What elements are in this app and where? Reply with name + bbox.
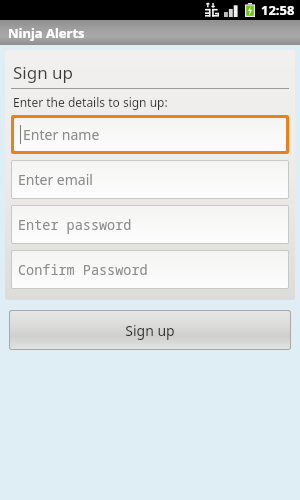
- staticText: Ninja Alerts: [8, 24, 85, 42]
- button[interactable]: Confirm Password: [12, 251, 288, 288]
- staticText: Enter password: [18, 216, 132, 234]
- staticText: Enter name: [23, 125, 100, 144]
- staticText: Enter the details to sign up:: [13, 94, 168, 110]
- staticText: 12:58: [261, 1, 295, 19]
- staticText: Sign up: [125, 321, 175, 340]
- staticText: Confirm Password: [18, 261, 148, 279]
- button[interactable]: Enter password: [12, 206, 288, 243]
- button[interactable]: Enter email: [12, 161, 288, 198]
- button[interactable]: Enter name: [14, 118, 286, 151]
- button[interactable]: Sign up: [10, 311, 290, 349]
- staticText: Sign up: [13, 61, 74, 84]
- staticText: Enter email: [18, 170, 93, 189]
